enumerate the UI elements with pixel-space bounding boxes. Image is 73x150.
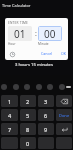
staticText: ENTER TIME — [8, 21, 29, 25]
button[interactable]: Cancel — [39, 49, 55, 58]
button[interactable]: Backspace — [56, 95, 72, 107]
staticText: 9 — [44, 126, 48, 133]
button[interactable]: 1 — [1, 95, 18, 107]
button[interactable]: Suggestion — [59, 84, 65, 90]
staticText: 4 — [8, 112, 12, 119]
staticText: 01 — [14, 27, 26, 41]
staticText: Hour — [8, 42, 16, 46]
button[interactable]: 5 — [20, 109, 36, 121]
button[interactable]: Suggestion — [1, 84, 7, 90]
button[interactable]: 9 — [38, 123, 54, 135]
button[interactable]: Enter — [56, 123, 72, 135]
button[interactable]: 6 — [38, 109, 54, 121]
staticText: 1 — [8, 98, 12, 105]
button[interactable]: Suggestion — [36, 84, 42, 90]
staticText: 2 — [26, 98, 30, 105]
staticText: 7 — [8, 126, 12, 133]
button[interactable]: Suggestion — [24, 84, 30, 90]
button[interactable]: 2 — [20, 95, 36, 107]
staticText: 3 hours 15 minutes — [15, 62, 53, 68]
staticText: : — [35, 29, 37, 39]
staticText: Done — [59, 113, 70, 118]
staticText: OK — [61, 51, 67, 56]
button[interactable]: Suggestion — [13, 84, 19, 90]
staticText: Minute — [38, 42, 49, 46]
button[interactable]: Suggestion — [47, 84, 53, 90]
button[interactable]: 7 — [1, 123, 18, 135]
button[interactable]: Switch to clock mode — [8, 50, 16, 58]
button[interactable]: 00 — [38, 26, 62, 41]
staticText: 8 — [26, 126, 30, 133]
button[interactable]: 3 — [38, 95, 54, 107]
staticText: 0 — [26, 140, 30, 147]
button[interactable]: Done — [56, 109, 72, 121]
button[interactable]: 0 — [20, 137, 36, 149]
button[interactable]: More — [66, 86, 71, 88]
staticText: Time Calculator — [2, 3, 31, 8]
button[interactable]: 8 — [20, 123, 36, 135]
staticText: 00 — [44, 27, 56, 41]
staticText: Cancel — [41, 51, 53, 56]
staticText: 5 — [26, 112, 30, 119]
staticText: 6 — [44, 112, 48, 119]
button[interactable]: 01 — [8, 26, 32, 41]
staticText: 3 — [44, 98, 48, 105]
button[interactable]: 4 — [1, 109, 18, 121]
button[interactable]: OK — [59, 49, 68, 58]
